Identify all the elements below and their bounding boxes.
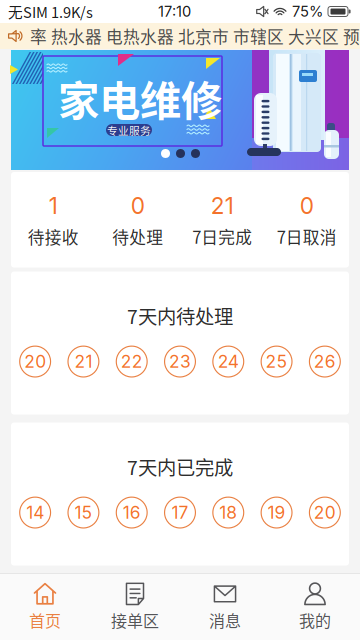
staticText: 家电维修 bbox=[58, 68, 222, 128]
staticText: 接单区 bbox=[111, 608, 159, 632]
button[interactable]: 19 bbox=[252, 497, 301, 529]
staticText: 20 bbox=[314, 502, 336, 523]
button[interactable]: 26 bbox=[301, 346, 349, 378]
staticText: 21 bbox=[74, 351, 92, 372]
staticText: 1 bbox=[49, 192, 58, 219]
button[interactable]: 25 bbox=[252, 346, 301, 378]
staticText: 无SIM 1.9K/s bbox=[8, 1, 93, 22]
button[interactable]: 14 bbox=[11, 497, 59, 529]
button[interactable]: 首页 bbox=[0, 569, 90, 640]
staticText: 26 bbox=[314, 351, 336, 372]
staticText: 23 bbox=[169, 351, 191, 372]
staticText: 22 bbox=[121, 351, 143, 372]
staticText: 0 bbox=[131, 192, 145, 219]
button[interactable]: 17 bbox=[156, 497, 204, 529]
staticText: 我的 bbox=[299, 608, 331, 632]
staticText: 首页 bbox=[29, 608, 61, 632]
button[interactable]: 接单区 bbox=[90, 569, 180, 640]
button[interactable]: 21 bbox=[180, 172, 264, 268]
button[interactable]: 0 bbox=[95, 172, 180, 268]
button[interactable]: 23 bbox=[156, 346, 204, 378]
staticText: 7日完成 bbox=[192, 224, 252, 248]
staticText: 18 bbox=[219, 502, 237, 523]
staticText: 7日取消 bbox=[277, 224, 337, 248]
button[interactable]: 20 bbox=[11, 346, 59, 378]
staticText: 7天内待处理 bbox=[127, 302, 233, 330]
button[interactable]: 0 bbox=[264, 172, 349, 268]
staticText: 14 bbox=[26, 502, 44, 523]
staticText: 75% bbox=[292, 3, 323, 20]
button[interactable]: 21 bbox=[59, 346, 108, 378]
staticText: 0 bbox=[300, 192, 314, 219]
staticText: 消息 bbox=[209, 608, 241, 632]
button[interactable]: 1 bbox=[11, 172, 95, 268]
button[interactable]: 我的 bbox=[270, 569, 360, 640]
staticText: 17 bbox=[171, 502, 188, 523]
staticText: 21 bbox=[211, 192, 234, 219]
button[interactable]: 18 bbox=[204, 497, 252, 529]
button[interactable]: 22 bbox=[108, 346, 156, 378]
button[interactable]: 16 bbox=[108, 497, 156, 529]
staticText: 24 bbox=[218, 351, 239, 372]
staticText: 15 bbox=[74, 502, 92, 523]
staticText: 待处理 bbox=[112, 224, 163, 248]
staticText: 专业服务 bbox=[107, 122, 151, 138]
staticText: 25 bbox=[266, 351, 288, 372]
staticText: 20 bbox=[24, 351, 46, 372]
staticText: 19 bbox=[268, 502, 286, 523]
staticText: 率 热水器 电热水器 北京市 市辖区 大兴区 预 bbox=[30, 24, 360, 48]
staticText: 17:10 bbox=[158, 3, 191, 20]
button[interactable]: 15 bbox=[59, 497, 108, 529]
button[interactable]: 消息 bbox=[180, 569, 270, 640]
button[interactable]: 24 bbox=[204, 346, 252, 378]
staticText: 7天内已完成 bbox=[127, 453, 233, 481]
staticText: 16 bbox=[123, 502, 141, 523]
staticText: 待接收 bbox=[28, 224, 79, 248]
button[interactable]: 20 bbox=[301, 497, 349, 529]
